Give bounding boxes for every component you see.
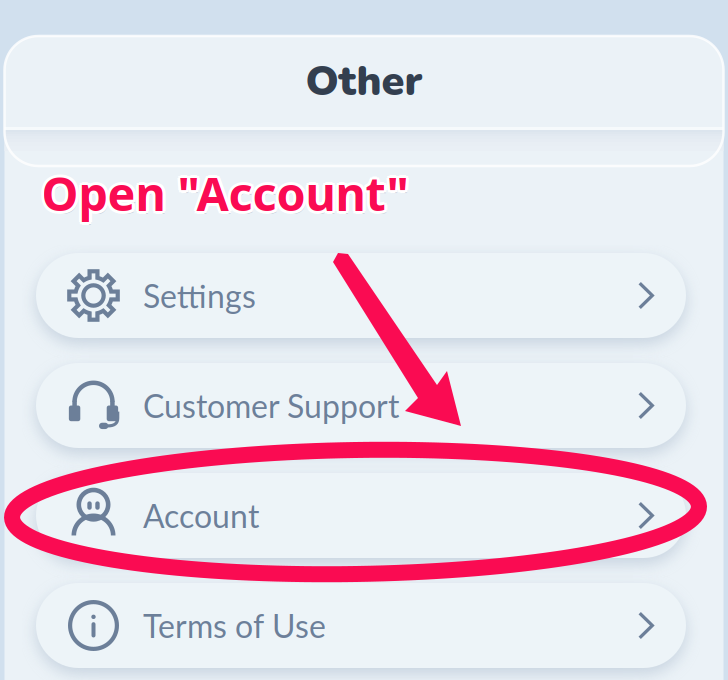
button[interactable]: Account	[36, 473, 686, 558]
staticText: Open "Account"	[41, 161, 408, 225]
staticText: Open "Account"	[44, 159, 411, 223]
staticText: Open "Account"	[43, 164, 410, 228]
staticText: Open "Account"	[39, 163, 406, 227]
staticText: Open "Account"	[41, 158, 408, 222]
staticText: Settings	[143, 276, 256, 315]
button[interactable]: Customer Support	[36, 363, 686, 448]
staticText: Open "Account"	[41, 164, 408, 228]
staticText: Customer Support	[143, 386, 399, 425]
staticText: Open "Account"	[44, 163, 411, 227]
button[interactable]: Terms of Use	[36, 583, 686, 668]
staticText: Open "Account"	[38, 161, 405, 225]
staticText: Open "Account"	[39, 159, 406, 223]
staticText: Account	[143, 496, 259, 535]
staticText: Terms of Use	[143, 606, 326, 645]
staticText: Other	[305, 53, 422, 110]
button[interactable]: Settings	[36, 253, 686, 338]
staticText: Open "Account"	[44, 161, 411, 225]
